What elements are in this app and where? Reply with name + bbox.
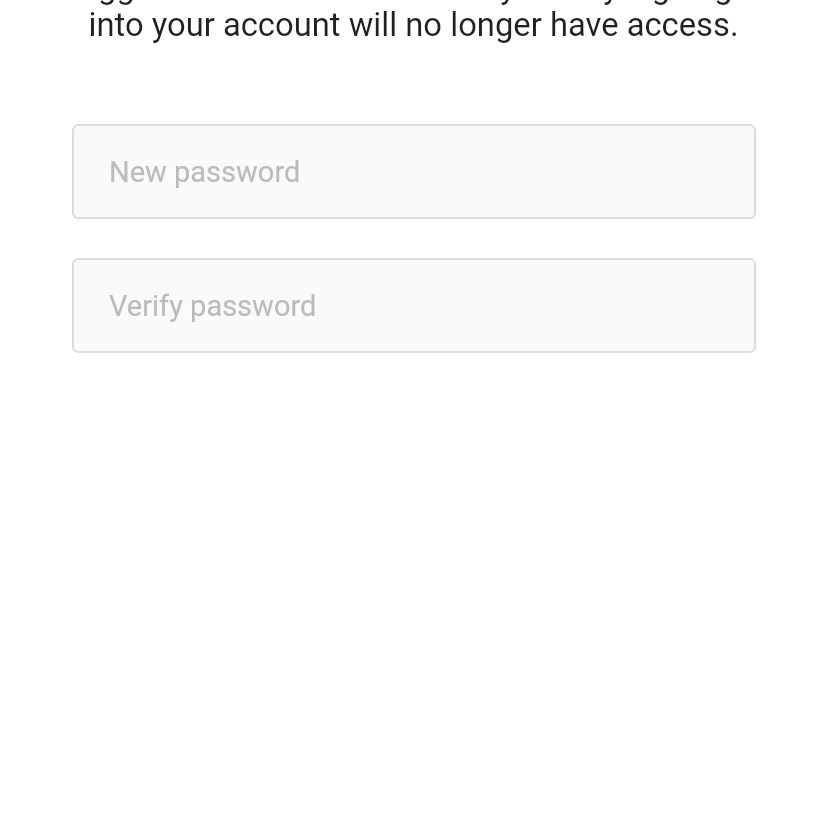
staticText: into your account will no longer have ac… bbox=[88, 6, 739, 44]
button[interactable]: Verify password bbox=[72, 258, 756, 353]
staticText: Verify password bbox=[109, 289, 317, 323]
button[interactable]: New password bbox=[72, 124, 756, 219]
staticText: New password bbox=[109, 155, 301, 189]
staticText: logged in to the account in any can by s… bbox=[71, 0, 733, 6]
